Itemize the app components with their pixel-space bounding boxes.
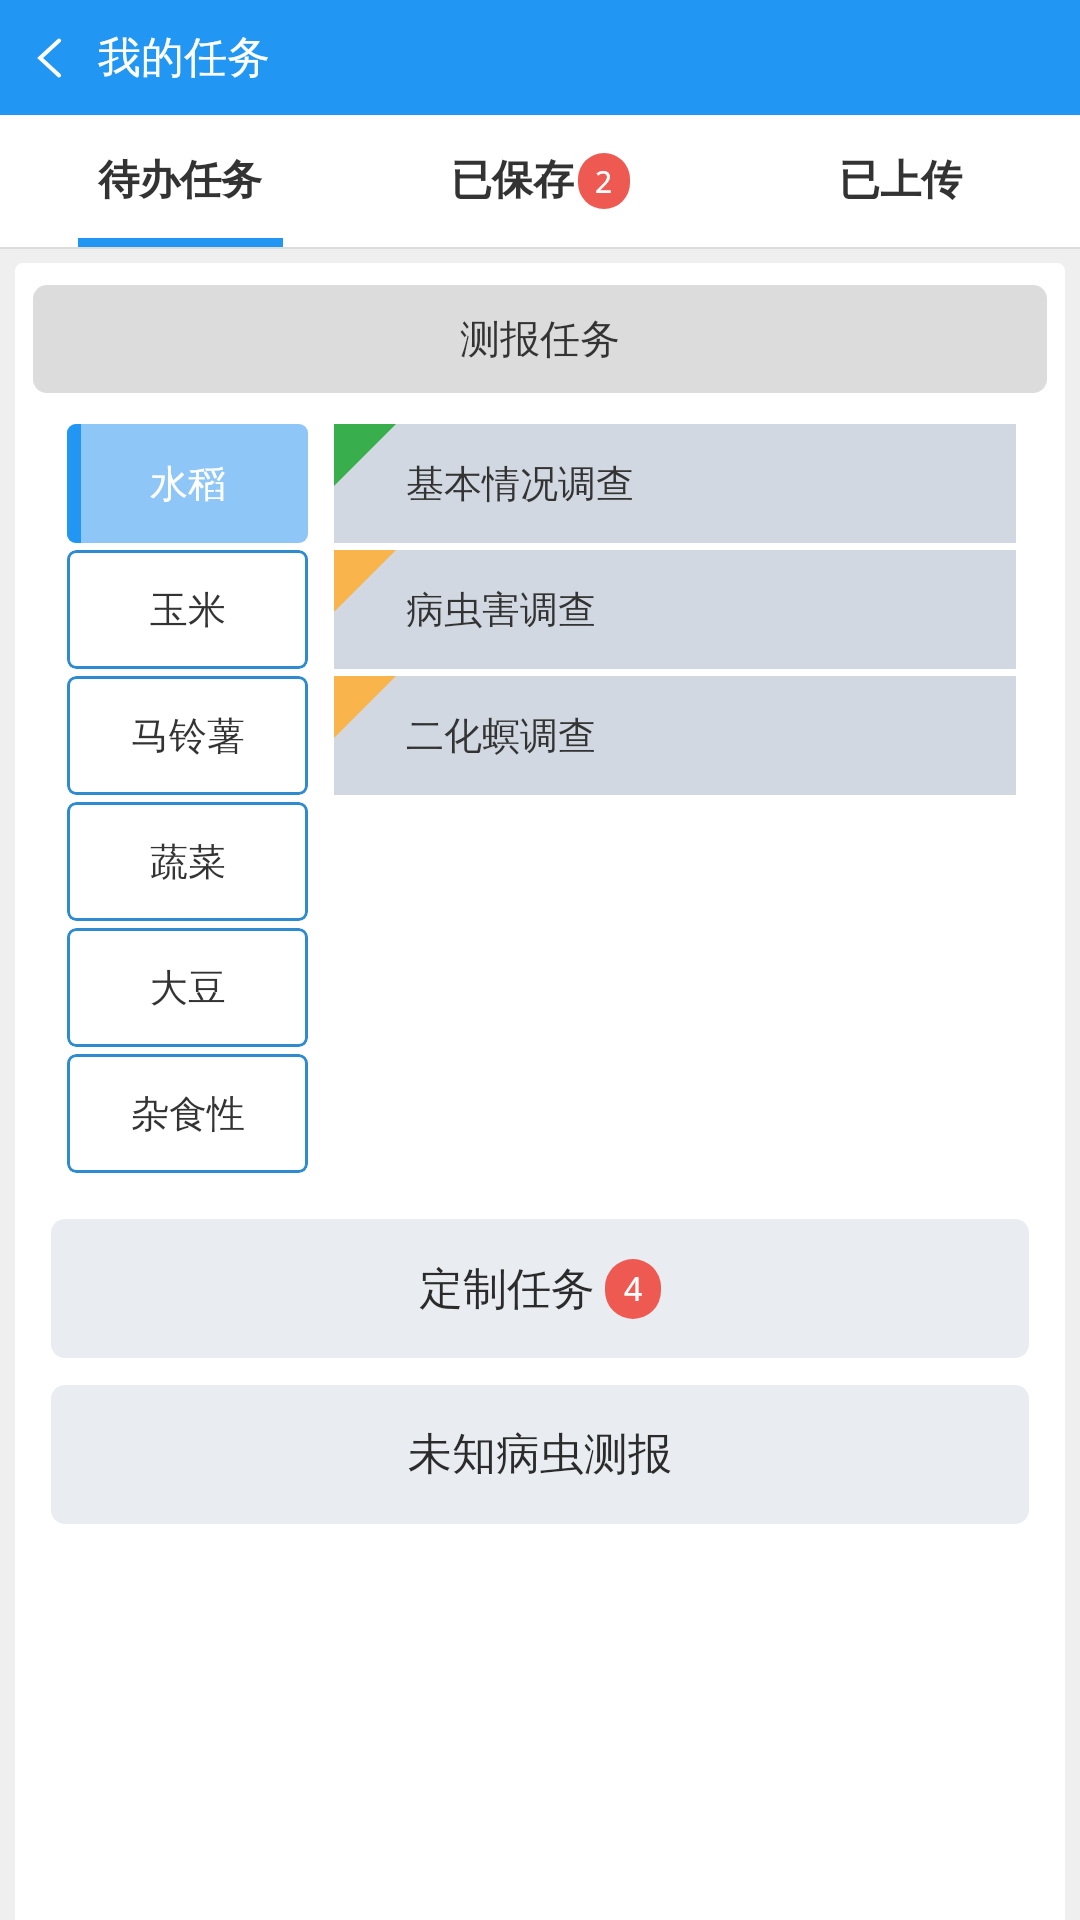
staticText: 蔬菜 [150, 838, 226, 886]
button[interactable]: 杂食性 [67, 1054, 308, 1173]
staticText: 玉米 [150, 586, 226, 634]
button[interactable]: 水稻 [67, 424, 308, 543]
button[interactable]: 马铃薯 [67, 676, 308, 795]
staticText: 4 [624, 1267, 643, 1311]
button[interactable]: 已保存 [360, 115, 720, 247]
staticText: 二化螟调查 [406, 712, 596, 760]
staticText: 2 [595, 161, 613, 202]
button[interactable]: 测报任务 [33, 285, 1047, 393]
button[interactable]: 大豆 [67, 928, 308, 1047]
staticText: 水稻 [150, 460, 226, 508]
button[interactable]: 基本情况调查 [334, 424, 1016, 543]
staticText: 大豆 [150, 964, 226, 1012]
staticText: 已保存 [451, 155, 574, 207]
staticText: 未知病虫测报 [408, 1427, 672, 1482]
button[interactable]: 未知病虫测报 [51, 1385, 1029, 1524]
staticText: 病虫害调查 [406, 586, 596, 634]
button[interactable]: Back [18, 26, 82, 90]
button[interactable]: 玉米 [67, 550, 308, 669]
staticText: 待办任务 [98, 155, 262, 207]
staticText: 测报任务 [460, 314, 620, 364]
button[interactable]: 二化螟调查 [334, 676, 1016, 795]
button[interactable]: 待办任务 [0, 115, 360, 247]
button[interactable]: 定制任务 [51, 1219, 1029, 1358]
button[interactable]: 病虫害调查 [334, 550, 1016, 669]
staticText: 马铃薯 [131, 712, 245, 760]
staticText: 杂食性 [131, 1090, 245, 1138]
button[interactable]: 蔬菜 [67, 802, 308, 921]
staticText: 我的任务 [98, 31, 270, 85]
staticText: 定制任务 [419, 1262, 595, 1317]
staticText: 基本情况调查 [406, 460, 634, 508]
button[interactable]: 已上传 [720, 115, 1080, 247]
staticText: 已上传 [839, 155, 962, 207]
